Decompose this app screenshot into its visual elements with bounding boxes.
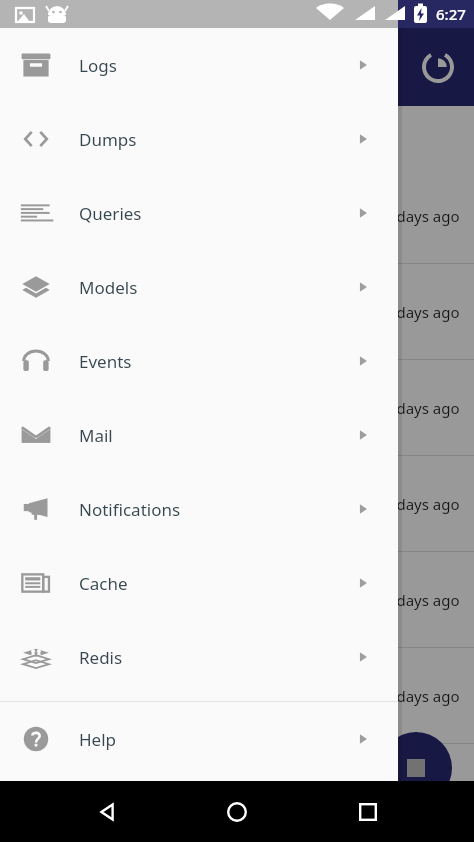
- staticText: 2 days ago: [384, 590, 460, 610]
- staticText: Dumps: [79, 128, 137, 151]
- staticText: Notifications: [79, 498, 181, 521]
- button[interactable]: Redis: [0, 620, 398, 694]
- staticText: 2 days ago: [384, 302, 460, 322]
- button[interactable]: Dumps: [0, 102, 398, 176]
- staticText: Logs: [79, 54, 117, 77]
- button[interactable]: Queries: [0, 176, 398, 250]
- staticText: Models: [79, 276, 138, 299]
- staticText: 2 days ago: [384, 686, 460, 706]
- button[interactable]: Notifications: [0, 472, 398, 546]
- button[interactable]: Home: [213, 788, 261, 836]
- staticText: Queries: [79, 202, 142, 225]
- staticText: 6:27: [436, 4, 466, 24]
- staticText: 2 days ago: [384, 398, 460, 418]
- staticText: Cache: [79, 572, 128, 595]
- button[interactable]: Stop: [380, 732, 452, 804]
- button[interactable]: Models: [0, 250, 398, 324]
- button[interactable]: Help: [0, 702, 398, 776]
- staticText: Redis: [79, 646, 123, 669]
- staticText: Help: [79, 728, 117, 751]
- button[interactable]: Mail: [0, 398, 398, 472]
- staticText: 2 days ago: [384, 206, 460, 226]
- button[interactable]: Recents: [344, 788, 392, 836]
- button[interactable]: Cache: [0, 546, 398, 620]
- staticText: 2 days ago: [384, 494, 460, 514]
- button[interactable]: Logs: [0, 28, 398, 102]
- button[interactable]: Events: [0, 324, 398, 398]
- staticText: Events: [79, 350, 132, 373]
- button[interactable]: Dashboard: [418, 47, 458, 87]
- button[interactable]: Back: [83, 788, 131, 836]
- staticText: Mail: [79, 424, 113, 447]
